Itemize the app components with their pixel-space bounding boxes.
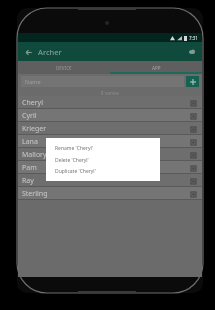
- button[interactable]: Sterling: [18, 187, 202, 200]
- button[interactable]: Add name: [186, 76, 199, 87]
- staticText: APP: [152, 65, 161, 71]
- staticText: Krieger: [22, 124, 47, 134]
- staticText: 7:31: [189, 35, 198, 41]
- button[interactable]: Rename 'Cheryl': [46, 142, 160, 154]
- staticText: Cyril: [22, 111, 37, 121]
- staticText: Archer: [38, 47, 62, 57]
- button[interactable]: Delete 'Cheryl': [46, 154, 160, 166]
- staticText: 8 names: [101, 90, 119, 96]
- button[interactable]: Ray: [18, 174, 202, 187]
- staticText: Duplicate 'Cheryl': [55, 168, 96, 175]
- staticText: Ray: [22, 176, 34, 186]
- staticText: Delete 'Cheryl': [55, 157, 89, 164]
- button[interactable]: More options for Lana: [189, 138, 197, 146]
- button[interactable]: More options for Krieger: [189, 125, 197, 133]
- button[interactable]: More options for Mallory: [189, 151, 197, 159]
- staticText: Cheryl: [22, 98, 43, 108]
- staticText: Mallory: [22, 150, 47, 160]
- button[interactable]: Krieger: [18, 122, 202, 135]
- button[interactable]: Cheryl: [18, 96, 202, 109]
- button[interactable]: Lana: [18, 135, 202, 148]
- staticText: Rename 'Cheryl': [55, 145, 93, 152]
- button[interactable]: Duplicate 'Cheryl': [46, 166, 160, 177]
- staticText: DEVICE: [56, 65, 72, 71]
- button[interactable]: More options for Ray: [189, 177, 197, 185]
- button[interactable]: More options for Cheryl: [189, 99, 197, 107]
- button[interactable]: DEVICE: [18, 61, 110, 74]
- button[interactable]: More options for Sterling: [189, 190, 197, 198]
- staticText: Sterling: [22, 189, 48, 199]
- button[interactable]: Cyril: [18, 109, 202, 122]
- button[interactable]: More options for Pam: [189, 164, 197, 172]
- button[interactable]: Mallory: [18, 148, 202, 161]
- button[interactable]: Backup: [185, 45, 199, 59]
- staticText: Lana: [22, 137, 38, 147]
- button[interactable]: APP: [110, 61, 202, 74]
- button[interactable]: More options for Cyril: [189, 112, 197, 120]
- staticText: Pam: [22, 163, 37, 173]
- staticText: Name: [25, 78, 41, 85]
- button[interactable]: Pam: [18, 161, 202, 174]
- button[interactable]: Back: [21, 45, 35, 59]
